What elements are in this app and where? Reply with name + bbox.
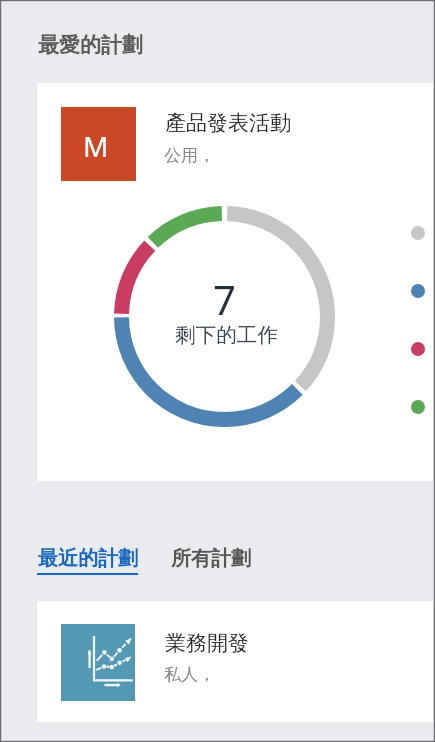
staticText: 所有計劃 — [171, 546, 251, 571]
staticText: M — [83, 127, 109, 165]
button[interactable]: 最近的計劃 — [37, 546, 139, 575]
staticText: 7 — [213, 272, 236, 326]
staticText: 最愛的計劃 — [38, 32, 143, 58]
button[interactable]: 所有計劃 — [170, 546, 252, 571]
staticText: 最近的計劃 — [38, 546, 138, 571]
staticText: 私人， — [164, 664, 215, 685]
button[interactable]: M — [37, 83, 435, 481]
button[interactable]: 業務開發 — [37, 601, 435, 722]
staticText: 產品發表活動 — [165, 110, 291, 136]
staticText: 公用， — [164, 145, 215, 166]
staticText: 業務開發 — [165, 630, 249, 656]
staticText: 剩下的工作 — [175, 322, 278, 348]
